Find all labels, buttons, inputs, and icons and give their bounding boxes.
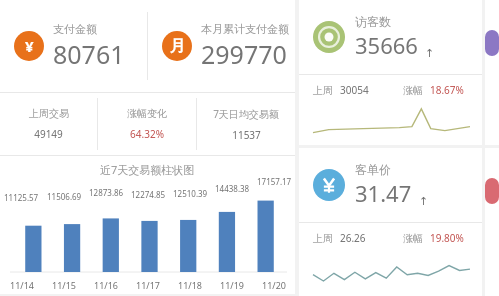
other: Metric xyxy=(485,30,499,56)
staticText: 本月累计支付金额 xyxy=(201,22,289,36)
button[interactable]: Visitors xyxy=(299,0,482,145)
staticText: 7天日均交易额 xyxy=(213,107,279,121)
staticText: 31.47 xyxy=(355,178,412,208)
button[interactable]: Metric xyxy=(485,148,499,296)
button[interactable]: 本月累计支付金额 xyxy=(148,0,295,92)
staticText: 26.26 xyxy=(340,231,366,245)
staticText: ↑ xyxy=(419,195,429,208)
staticText: 11/19 xyxy=(220,279,244,291)
staticText: 64.32% xyxy=(130,127,164,141)
staticText: 299770 xyxy=(201,37,287,71)
other: Metric xyxy=(485,178,499,204)
staticText: 近7天交易额柱状图 xyxy=(100,162,195,177)
staticText: 上周 xyxy=(313,84,333,97)
staticText: 客单价 xyxy=(355,162,391,177)
staticText: 11537 xyxy=(232,128,261,142)
other: 支付金额 xyxy=(14,31,44,61)
staticText: 11/18 xyxy=(178,279,202,291)
staticText: 上周交易 xyxy=(29,107,69,120)
staticText: ¥ xyxy=(25,36,34,56)
button[interactable]: 7天日均交易额 xyxy=(197,93,295,155)
staticText: 12274.85 xyxy=(131,189,166,200)
button[interactable]: Metric xyxy=(485,0,499,145)
staticText: 支付金额 xyxy=(53,22,97,36)
staticText: 18.67% xyxy=(430,83,464,97)
staticText: 11506.69 xyxy=(47,191,82,202)
staticText: 访客数 xyxy=(355,14,391,29)
staticText: 11/16 xyxy=(94,279,118,291)
staticText: 17157.17 xyxy=(257,176,292,187)
staticText: 上周 xyxy=(313,232,333,245)
staticText: 涨幅 xyxy=(403,84,423,97)
staticText: 11/20 xyxy=(262,279,286,291)
staticText: 11125.57 xyxy=(4,192,39,203)
other: 本月累计支付金额 xyxy=(162,31,192,61)
staticText: ↑ xyxy=(425,47,435,60)
staticText: 11/17 xyxy=(136,279,160,291)
staticText: 11/15 xyxy=(52,279,76,291)
button[interactable]: 涨幅变化 xyxy=(98,93,196,155)
other: Average order value xyxy=(313,169,345,201)
staticText: 35666 xyxy=(355,30,418,60)
staticText: 80761 xyxy=(53,37,125,71)
staticText: 30054 xyxy=(340,83,369,97)
staticText: 12873.86 xyxy=(89,187,124,198)
staticText: 月 xyxy=(170,37,185,56)
staticText: 涨幅变化 xyxy=(127,107,167,120)
staticText: 49149 xyxy=(34,127,63,141)
staticText: 14438.38 xyxy=(215,183,250,194)
button[interactable]: 上周交易 xyxy=(0,93,97,155)
staticText: 19.80% xyxy=(430,231,464,245)
button[interactable]: Average order value xyxy=(299,148,482,296)
other: Visitors xyxy=(313,21,345,53)
staticText: 11/14 xyxy=(10,279,34,291)
staticText: 12510.39 xyxy=(173,188,208,199)
button[interactable]: 支付金额 xyxy=(0,0,147,92)
staticText: 涨幅 xyxy=(403,232,423,245)
